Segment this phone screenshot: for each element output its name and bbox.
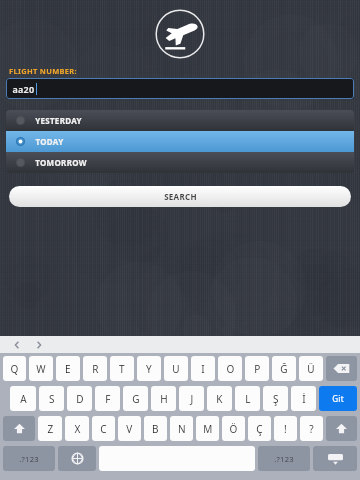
button[interactable]: Z <box>38 416 62 441</box>
staticText: H <box>160 392 168 406</box>
button[interactable]: N <box>170 416 193 441</box>
button[interactable]: Backspace <box>326 356 357 381</box>
staticText: Ş <box>273 392 279 406</box>
button[interactable]: Ç <box>248 416 271 441</box>
staticText: R <box>92 362 99 376</box>
staticText: İ <box>302 392 306 406</box>
button[interactable]: R <box>83 356 107 381</box>
button[interactable]: J <box>179 386 204 411</box>
staticText: A <box>20 392 27 406</box>
staticText: Q <box>10 362 19 376</box>
staticText: F <box>105 392 111 406</box>
button[interactable]: Hide keyboard <box>313 446 357 471</box>
staticText: V <box>126 422 133 436</box>
staticText: J <box>190 392 194 406</box>
button[interactable]: T <box>110 356 134 381</box>
staticText: Ğ <box>280 362 288 376</box>
staticText: N <box>178 422 186 436</box>
staticText: ! <box>284 422 287 436</box>
staticText: TOMORROW <box>35 157 87 168</box>
staticText: W <box>36 362 46 376</box>
button[interactable]: SEARCH <box>9 186 351 207</box>
staticText: Z <box>47 422 54 436</box>
button[interactable]: L <box>235 386 260 411</box>
button[interactable]: Shift <box>3 416 35 441</box>
button[interactable]: Ğ <box>272 356 296 381</box>
staticText: YESTERDAY <box>35 115 82 126</box>
button[interactable]: A <box>10 386 36 411</box>
button[interactable]: ? <box>300 416 323 441</box>
button[interactable]: Ö <box>222 416 245 441</box>
staticText: TODAY <box>35 136 64 147</box>
button[interactable]: O <box>218 356 242 381</box>
button[interactable]: Q <box>3 356 26 381</box>
staticText: Ü <box>307 362 315 376</box>
button[interactable]: Previous field <box>10 338 23 351</box>
button[interactable]: I <box>191 356 215 381</box>
button[interactable]: TOMORROW <box>6 152 354 173</box>
button[interactable]: Git <box>319 386 357 411</box>
staticText: D <box>76 392 84 406</box>
button[interactable]: Change keyboard language <box>58 446 96 471</box>
staticText: SEARCH <box>164 191 197 202</box>
button[interactable]: Y <box>137 356 161 381</box>
button[interactable]: .?123 <box>258 446 310 471</box>
staticText: S <box>49 392 55 406</box>
staticText: FLIGHT NUMBER: <box>9 66 77 76</box>
button[interactable]: M <box>196 416 219 441</box>
button[interactable]: aa20 <box>6 78 354 99</box>
button[interactable]: .?123 <box>3 446 55 471</box>
button[interactable]: B <box>144 416 167 441</box>
staticText: P <box>254 362 261 376</box>
button[interactable]: İ <box>291 386 316 411</box>
button[interactable]: C <box>92 416 115 441</box>
button[interactable]: D <box>67 386 92 411</box>
staticText: X <box>74 422 81 436</box>
button[interactable]: P <box>245 356 269 381</box>
staticText: G <box>132 392 140 406</box>
button[interactable]: E <box>56 356 80 381</box>
staticText: B <box>152 422 159 436</box>
staticText: I <box>201 362 205 376</box>
button[interactable]: Ş <box>263 386 288 411</box>
button[interactable]: U <box>164 356 188 381</box>
staticText: Ö <box>229 422 238 436</box>
button[interactable]: Ü <box>299 356 323 381</box>
button[interactable]: G <box>123 386 148 411</box>
button[interactable]: Shift <box>326 416 357 441</box>
staticText: .?123 <box>19 454 39 464</box>
staticText: E <box>65 362 71 376</box>
button[interactable]: F <box>95 386 120 411</box>
button[interactable]: TODAY <box>6 131 354 152</box>
staticText: O <box>226 362 235 376</box>
staticText: L <box>245 392 251 406</box>
staticText: ? <box>309 422 314 436</box>
staticText: C <box>100 422 107 436</box>
staticText: Git <box>332 393 344 404</box>
button[interactable]: V <box>118 416 141 441</box>
staticText: M <box>203 422 213 436</box>
button[interactable]: W <box>29 356 53 381</box>
button[interactable]: X <box>65 416 89 441</box>
button[interactable]: S <box>39 386 64 411</box>
staticText: .?123 <box>274 454 294 464</box>
staticText: U <box>172 362 180 376</box>
button[interactable]: K <box>207 386 232 411</box>
button[interactable]: YESTERDAY <box>6 110 354 131</box>
staticText: Ç <box>256 422 263 436</box>
button[interactable]: H <box>151 386 176 411</box>
staticText: aa20 <box>12 83 35 95</box>
button[interactable]: ! <box>274 416 297 441</box>
button[interactable]: Next field <box>32 338 45 351</box>
staticText: T <box>119 362 125 376</box>
staticText: K <box>216 392 223 406</box>
staticText: Y <box>146 362 152 376</box>
